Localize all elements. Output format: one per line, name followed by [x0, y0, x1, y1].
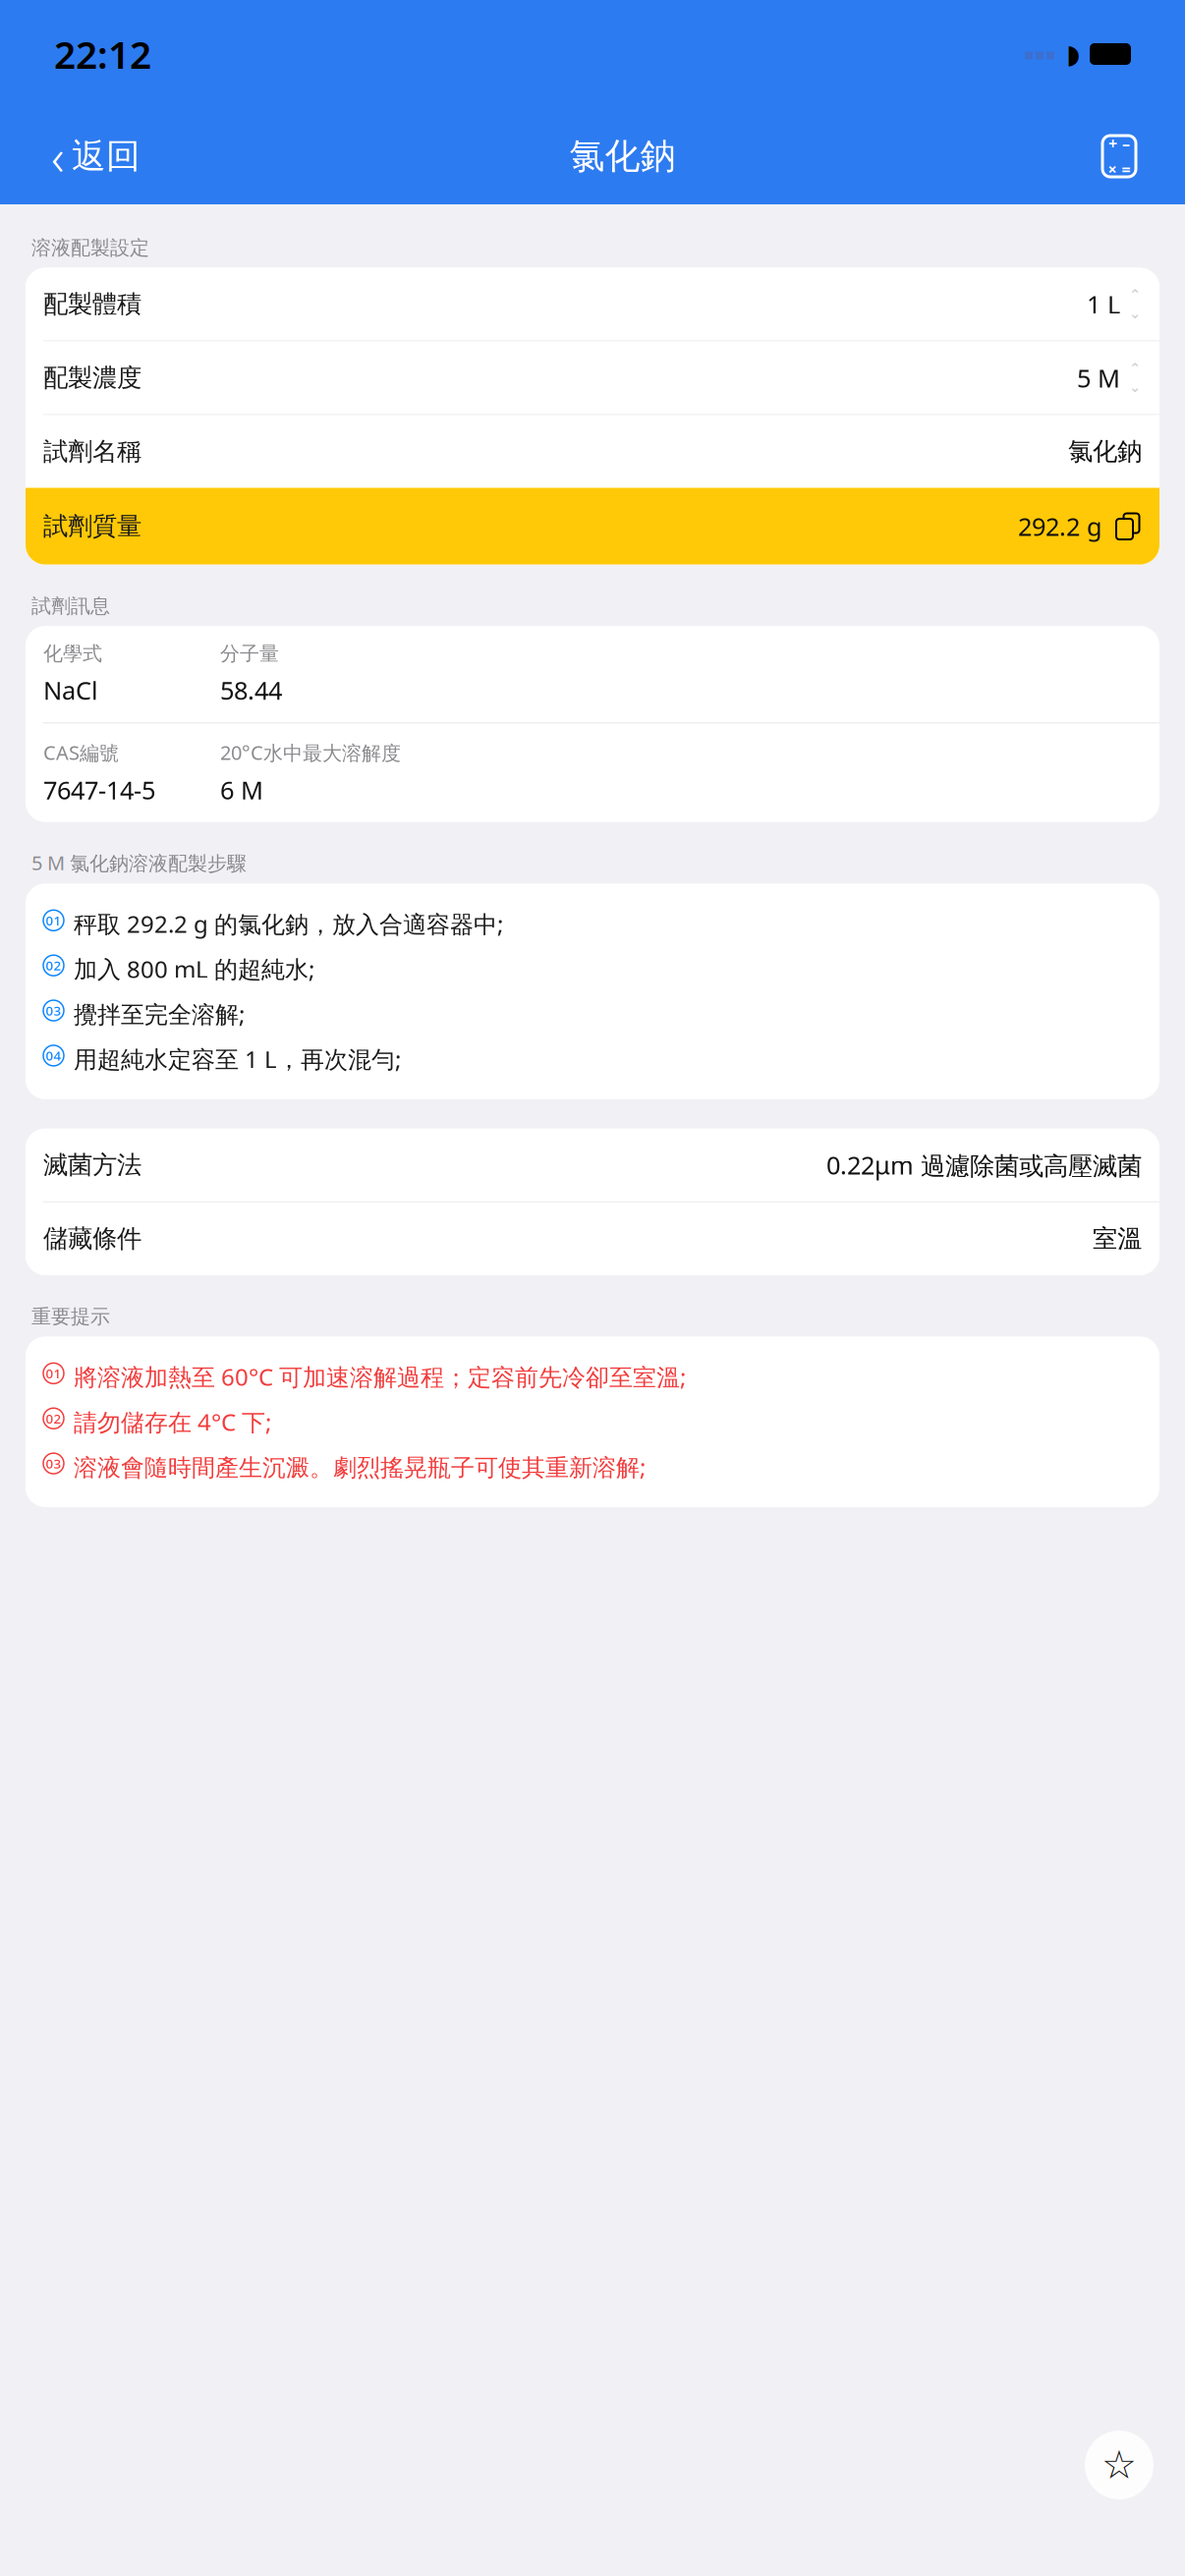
staticText: 氯化鈉 [1068, 436, 1142, 467]
staticText: 配製體積 [43, 289, 141, 319]
button[interactable]: 配製體積 [26, 268, 1159, 341]
staticText: 7647-14-5 [43, 773, 155, 806]
staticText: 滅菌方法 [43, 1150, 141, 1180]
staticText: 02 [46, 957, 61, 974]
button[interactable]: Favourite [1085, 2431, 1154, 2499]
staticText: 5 M [1077, 361, 1120, 394]
staticText: CAS編號 [43, 739, 119, 765]
staticText: 58.44 [220, 674, 282, 707]
button[interactable]: Calculator [1093, 127, 1146, 186]
staticText: 22:12 [54, 29, 151, 79]
staticText: 重要提示 [31, 1305, 110, 1329]
staticText: ◗ [1066, 39, 1080, 69]
staticText: 292.2 g [1018, 510, 1102, 543]
staticText: 1 L [1087, 288, 1120, 321]
staticText: × [1108, 159, 1117, 179]
staticText: 5 M 氯化鈉溶液配製步驟 [31, 849, 247, 876]
staticText: 將溶液加熱至 60°C 可加速溶解過程；定容前先冷卻至室溫; [74, 1361, 686, 1392]
staticText: 分子量 [220, 642, 279, 666]
staticText: 6 M [220, 773, 263, 806]
staticText: 化學式 [43, 642, 102, 666]
staticText: 用超純水定容至 1 L，再次混勻; [74, 1043, 401, 1075]
button[interactable]: 試劑質量 [26, 488, 1159, 565]
staticText: ☆ [1101, 2443, 1137, 2487]
staticText: 返回 [72, 135, 141, 177]
button[interactable]: 配製濃度 [26, 342, 1159, 414]
staticText: 01 [46, 1365, 61, 1382]
staticText: = [1122, 159, 1130, 179]
staticText: ⌄ [1129, 379, 1141, 395]
staticText: 03 [46, 1455, 61, 1472]
button[interactable]: 儲藏條件 [26, 1202, 1159, 1275]
staticText: 試劑名稱 [43, 436, 141, 467]
staticText: 溶液配製設定 [31, 236, 149, 260]
staticText: 0.22μm 過濾除菌或高壓滅菌 [826, 1148, 1142, 1182]
staticText: + [1108, 133, 1117, 154]
staticText: 試劑質量 [43, 511, 141, 541]
staticText: ▪▪▪ [1024, 45, 1056, 63]
staticText: 04 [46, 1047, 61, 1064]
staticText: 攪拌至完全溶解; [74, 998, 245, 1030]
staticText: 請勿儲存在 4°C 下; [74, 1406, 271, 1437]
staticText: 試劑訊息 [31, 594, 110, 618]
staticText: ⌄ [1129, 305, 1141, 321]
staticText: NaCl [43, 674, 98, 707]
staticText: 氯化鈉 [569, 134, 676, 178]
staticText: – [1122, 133, 1130, 154]
staticText: 03 [46, 1002, 61, 1019]
staticText: 秤取 292.2 g 的氯化鈉，放入合適容器中; [74, 908, 503, 939]
staticText: 加入 800 mL 的超純水; [74, 953, 314, 985]
staticText: ⌃ [1129, 287, 1141, 303]
button[interactable]: ‹ [39, 127, 152, 186]
staticText: ⌃ [1129, 360, 1141, 377]
button[interactable]: 滅菌方法 [26, 1129, 1159, 1201]
staticText: 溶液會隨時間產生沉澱。劇烈搖晃瓶子可使其重新溶解; [74, 1451, 646, 1483]
staticText: ‹ [51, 123, 64, 189]
staticText: 20°C水中最大溶解度 [220, 739, 401, 765]
staticText: 02 [46, 1410, 61, 1427]
staticText: 室溫 [1093, 1223, 1142, 1254]
button[interactable]: 試劑名稱 [26, 415, 1159, 488]
staticText: 01 [46, 912, 61, 929]
staticText: 儲藏條件 [43, 1223, 141, 1254]
staticText: 配製濃度 [43, 363, 141, 393]
